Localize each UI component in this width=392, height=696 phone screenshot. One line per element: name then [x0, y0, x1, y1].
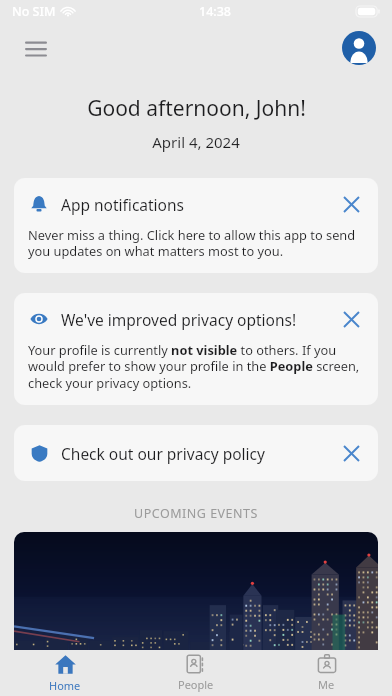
button[interactable]: Home [0, 650, 130, 696]
staticText: Good afternoon, John! [87, 94, 306, 123]
button[interactable]: Privacy policy [14, 425, 378, 481]
staticText: We've improved privacy options! [61, 309, 338, 330]
button[interactable]: Privacy options [14, 293, 378, 405]
button[interactable]: Menu [16, 28, 56, 68]
staticText: App notifications [61, 194, 338, 215]
button[interactable]: Upcoming event [14, 532, 378, 650]
staticText: Home [49, 678, 81, 693]
button[interactable]: Dismiss [338, 306, 364, 332]
button[interactable]: Dismiss [338, 191, 364, 217]
staticText: 14:38 [199, 3, 232, 20]
staticText: Never miss a thing. Click here to allow … [28, 226, 364, 260]
button[interactable]: Account [342, 31, 376, 65]
staticText: April 4, 2024 [152, 132, 240, 152]
staticText: No SIM [12, 3, 56, 20]
other: Notifications [28, 193, 50, 215]
other: Privacy options [28, 308, 50, 330]
staticText: Me [318, 677, 335, 692]
button[interactable]: Notifications [14, 178, 378, 273]
staticText: Check out our privacy policy [61, 443, 338, 464]
button[interactable]: Dismiss [338, 440, 364, 466]
staticText: UPCOMING EVENTS [0, 505, 392, 522]
staticText: Your profile is currently not visible to… [28, 341, 364, 392]
other: Privacy policy [28, 442, 50, 464]
button[interactable]: Me [261, 650, 392, 696]
button[interactable]: People [130, 650, 261, 696]
staticText: People [178, 677, 214, 692]
